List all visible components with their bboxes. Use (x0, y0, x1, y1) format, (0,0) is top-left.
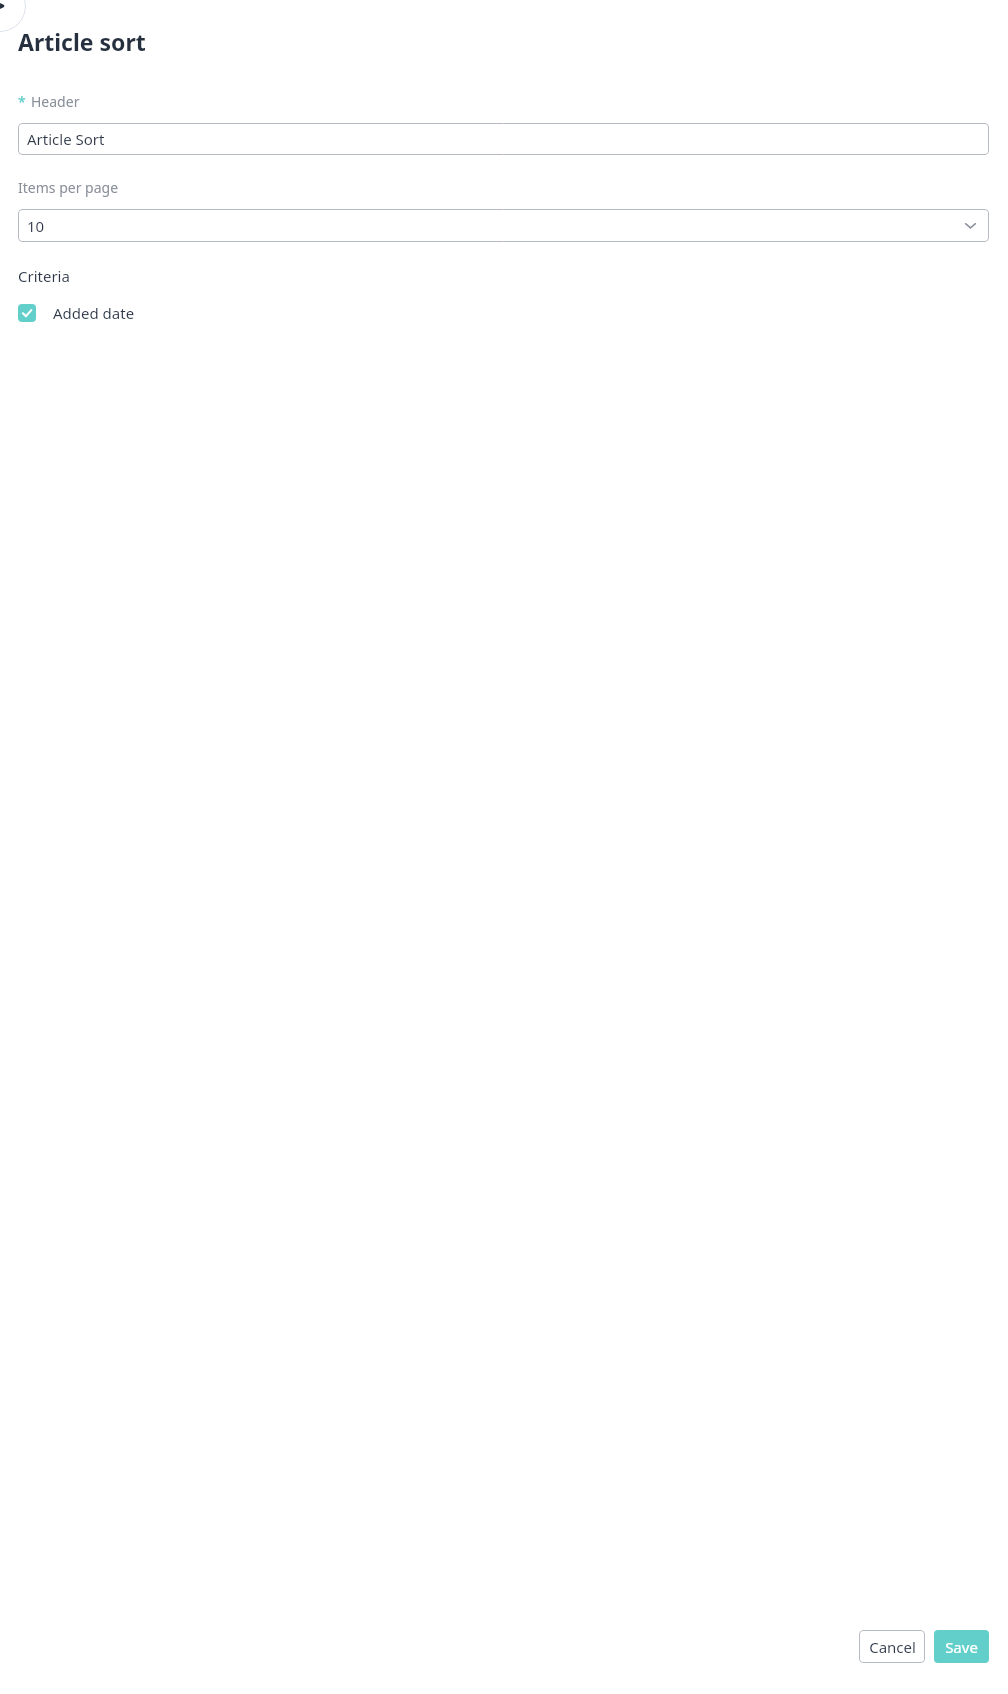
staticText: Cancel (869, 1637, 916, 1657)
button[interactable]: Save (934, 1630, 989, 1663)
staticText: Items per page (18, 178, 119, 197)
staticText: Save (945, 1637, 978, 1657)
button[interactable]: Cancel (859, 1630, 925, 1663)
staticText: Article Sort (27, 129, 105, 149)
button[interactable]: Added date (18, 301, 135, 325)
staticText: Article sort (18, 26, 146, 57)
button[interactable]: Items per page dropdown (18, 209, 989, 242)
staticText: Criteria (18, 266, 70, 286)
staticText: Header (31, 92, 80, 111)
staticText: Added date (53, 303, 135, 323)
staticText: * (18, 92, 26, 111)
staticText: 10 (27, 216, 45, 236)
button[interactable]: Article Sort (18, 123, 989, 155)
button[interactable]: Collapse panel (0, 0, 26, 32)
